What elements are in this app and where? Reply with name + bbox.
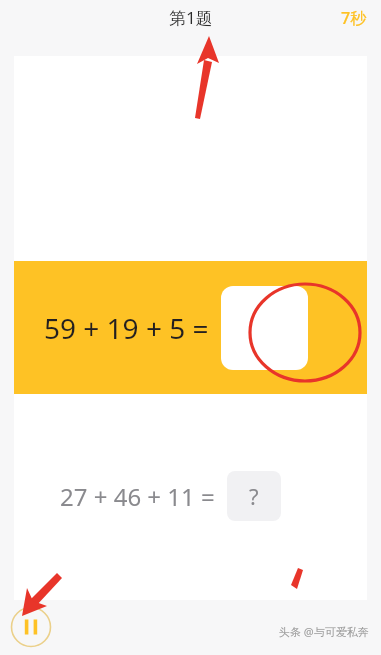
staticText: 7秒 [341, 7, 367, 29]
button[interactable]: Pause [10, 606, 52, 648]
button[interactable]: 7秒 [327, 4, 381, 32]
staticText: 第1题 [169, 6, 213, 29]
staticText: 59 + 19 + 5 = [44, 309, 209, 347]
button[interactable]: 59 + 19 + 5 = [14, 261, 367, 394]
staticText: 27 + 46 + 11 = [60, 480, 215, 513]
staticText: 头条 @与可爱私奔 [279, 624, 369, 639]
staticText: ? [249, 481, 259, 511]
button[interactable]: Answer input [221, 286, 308, 370]
button[interactable]: 27 + 46 + 11 = [14, 451, 367, 541]
